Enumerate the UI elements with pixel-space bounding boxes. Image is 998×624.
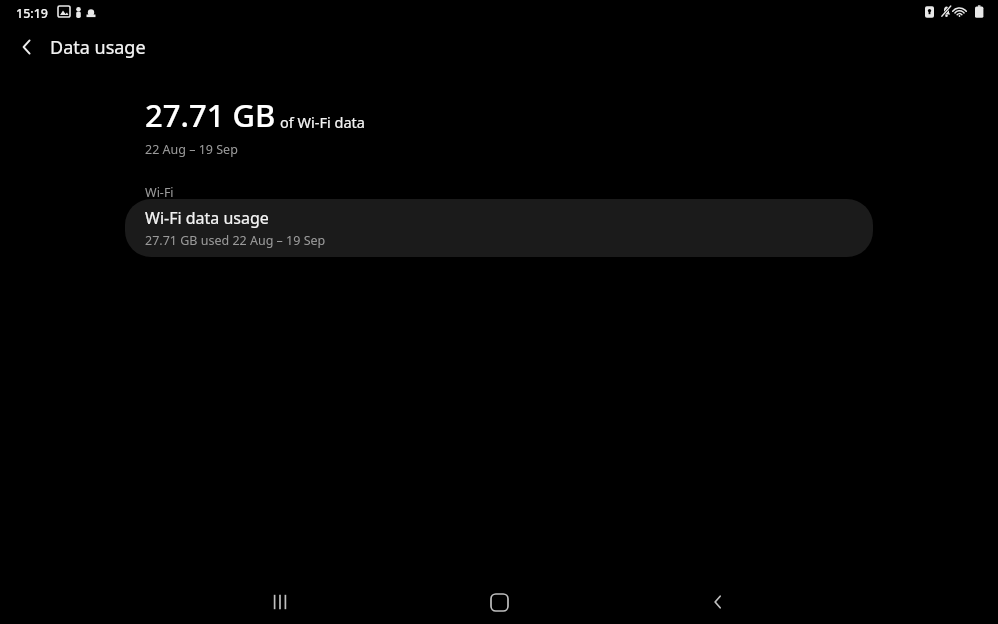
button[interactable]: Wi-Fi data usage [125, 199, 873, 257]
staticText: Wi-Fi [145, 184, 174, 201]
staticText: 22 Aug – 19 Sep [145, 141, 238, 158]
button[interactable]: Navigate up [7, 27, 47, 67]
staticText: 27.71 GB [145, 94, 276, 136]
staticText: 15:19 [16, 5, 49, 22]
button[interactable]: Back [694, 580, 742, 624]
staticText: Wi-Fi data usage [145, 207, 269, 229]
button[interactable]: Home [475, 580, 523, 624]
staticText: Data usage [50, 35, 146, 60]
staticText: of Wi-Fi data [280, 112, 365, 132]
button[interactable]: Recent apps [256, 580, 304, 624]
staticText: 27.71 GB used 22 Aug – 19 Sep [145, 232, 326, 249]
